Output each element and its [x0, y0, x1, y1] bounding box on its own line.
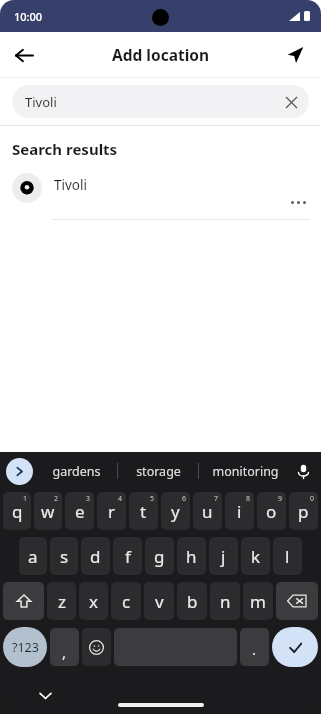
staticText: ?123 — [12, 639, 39, 656]
staticText: , — [62, 642, 67, 662]
staticText: i — [237, 500, 242, 523]
staticText: t — [140, 500, 147, 523]
staticText: v — [155, 590, 164, 613]
button[interactable]: w — [34, 492, 62, 530]
button[interactable]: , — [50, 628, 79, 666]
button[interactable]: . — [240, 628, 269, 666]
button[interactable]: q — [3, 492, 31, 530]
button[interactable]: o — [257, 492, 286, 530]
staticText: s — [60, 545, 69, 568]
staticText: y — [171, 500, 180, 523]
button[interactable]: u — [193, 492, 222, 530]
button[interactable]: y — [161, 492, 190, 530]
staticText: storage — [136, 463, 181, 480]
button[interactable]: j — [209, 537, 238, 575]
button[interactable]: f — [113, 537, 142, 575]
staticText: p — [298, 500, 309, 523]
staticText: Search results — [12, 139, 118, 159]
button[interactable]: ?123 — [3, 627, 47, 667]
staticText: x — [89, 590, 98, 613]
staticText: o — [266, 500, 277, 523]
button[interactable]: h — [177, 537, 206, 575]
staticText: 10:00 — [14, 9, 43, 24]
button[interactable]: Shift — [3, 582, 44, 620]
staticText: e — [75, 500, 85, 523]
staticText: 0 — [310, 494, 315, 504]
button[interactable]: e — [65, 492, 94, 530]
button[interactable]: Tivoli — [0, 173, 321, 220]
staticText: 2 — [54, 494, 59, 504]
button[interactable]: n — [210, 582, 240, 620]
button[interactable]: b — [177, 582, 207, 620]
staticText: monitoring — [212, 463, 279, 480]
button[interactable]: p — [289, 492, 318, 530]
staticText: j — [221, 545, 226, 568]
button[interactable]: i — [225, 492, 254, 530]
button[interactable]: c — [111, 582, 141, 620]
button[interactable]: z — [47, 582, 76, 620]
staticText: m — [250, 590, 266, 613]
button[interactable]: gardens — [36, 452, 117, 490]
staticText: 1 — [23, 494, 28, 504]
button[interactable]: k — [241, 537, 270, 575]
button[interactable]: r — [97, 492, 126, 530]
staticText: n — [220, 590, 231, 613]
button[interactable]: Voice input — [289, 457, 317, 485]
staticText: 4 — [118, 494, 123, 504]
staticText: k — [251, 545, 261, 568]
staticText: 6 — [182, 494, 187, 504]
staticText: l — [285, 545, 290, 568]
button[interactable]: m — [243, 582, 273, 620]
staticText: 8 — [246, 494, 251, 504]
staticText: w — [41, 500, 55, 523]
button[interactable]: l — [273, 537, 302, 575]
staticText: g — [154, 545, 165, 568]
staticText: . — [252, 639, 257, 659]
button[interactable]: Done — [272, 627, 318, 667]
button[interactable]: d — [81, 537, 110, 575]
staticText: 5 — [150, 494, 155, 504]
staticText: Tivoli — [25, 93, 57, 111]
staticText: d — [90, 545, 101, 568]
staticText: Add location — [112, 44, 210, 65]
button[interactable]: x — [79, 582, 108, 620]
button[interactable]: a — [19, 537, 47, 575]
staticText: c — [122, 590, 131, 613]
staticText: a — [28, 545, 38, 568]
staticText: 3 — [86, 494, 91, 504]
staticText: q — [12, 500, 23, 523]
staticText: gardens — [52, 463, 101, 480]
button[interactable]: Hide keyboard — [32, 682, 58, 708]
button[interactable]: Clear — [277, 88, 305, 116]
button[interactable]: More options — [283, 187, 313, 217]
button[interactable]: t — [129, 492, 158, 530]
staticText: u — [202, 500, 213, 523]
button[interactable]: storage — [118, 452, 198, 490]
staticText: 9 — [278, 494, 283, 504]
staticText: r — [108, 500, 116, 523]
staticText: Tivoli — [54, 176, 87, 194]
button[interactable]: Emoji — [82, 628, 111, 666]
button[interactable]: Back — [4, 35, 44, 75]
staticText: f — [125, 545, 131, 568]
staticText: b — [187, 590, 198, 613]
button[interactable]: g — [145, 537, 174, 575]
button[interactable]: Use current location — [275, 35, 315, 75]
staticText: 7 — [214, 494, 219, 504]
staticText: z — [58, 590, 66, 613]
staticText: h — [186, 545, 197, 568]
button[interactable]: s — [50, 537, 78, 575]
button[interactable]: Tivoli — [12, 85, 309, 118]
button[interactable]: Backspace — [276, 582, 318, 620]
button[interactable]: Expand suggestions — [6, 458, 33, 485]
button[interactable]: monitoring — [199, 452, 291, 490]
button[interactable]: v — [144, 582, 174, 620]
